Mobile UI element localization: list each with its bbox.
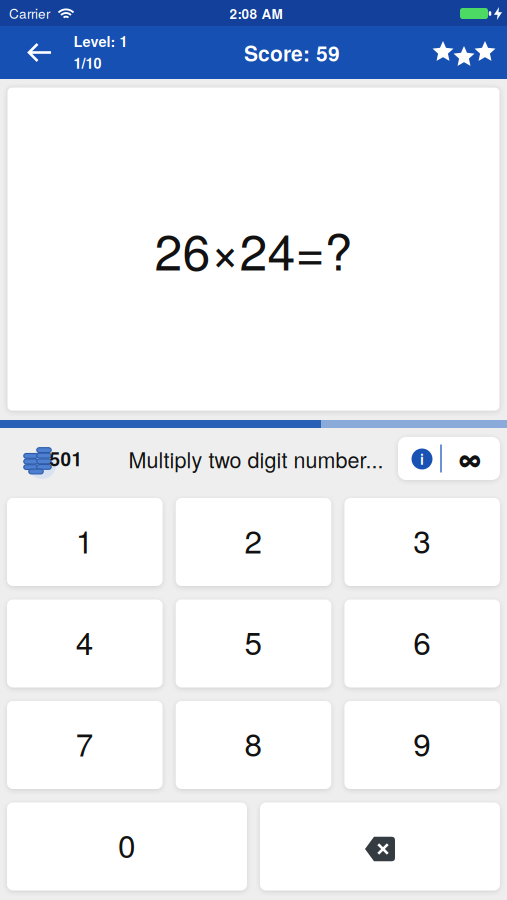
button[interactable]: 2 bbox=[176, 498, 331, 586]
button[interactable]: 9 bbox=[344, 701, 500, 789]
staticText: 6 bbox=[413, 619, 431, 664]
staticText: 2 bbox=[244, 517, 262, 562]
button[interactable]: 8 bbox=[176, 701, 331, 789]
staticText: Level: 1 bbox=[73, 31, 127, 51]
button[interactable]: 7 bbox=[7, 701, 163, 789]
button[interactable]: 0 bbox=[7, 802, 247, 890]
staticText: Multiply two digit number... bbox=[128, 444, 383, 474]
staticText: 1 bbox=[76, 517, 94, 562]
button[interactable]: 6 bbox=[344, 599, 500, 687]
button[interactable] bbox=[429, 36, 499, 70]
button[interactable] bbox=[15, 26, 63, 79]
staticText: 4 bbox=[76, 619, 94, 664]
staticText: 7 bbox=[76, 720, 94, 765]
staticText: 501 bbox=[49, 445, 82, 472]
staticText: 1/10 bbox=[73, 52, 101, 73]
button[interactable]: 5 bbox=[176, 599, 331, 687]
staticText: 5 bbox=[244, 619, 262, 664]
button[interactable] bbox=[260, 802, 500, 890]
staticText: Score: 59 bbox=[244, 38, 340, 68]
button[interactable]: 4 bbox=[7, 599, 163, 687]
staticText: Carrier bbox=[9, 3, 50, 23]
button[interactable]: 3 bbox=[344, 498, 500, 586]
staticText: 8 bbox=[244, 720, 262, 765]
button[interactable]: 1 bbox=[7, 498, 163, 586]
staticText: 3 bbox=[413, 517, 431, 562]
staticText: 26×24=? bbox=[154, 213, 352, 285]
staticText: 9 bbox=[413, 720, 431, 765]
button[interactable]: i bbox=[398, 437, 500, 480]
staticText: 0 bbox=[118, 822, 136, 867]
staticText: i bbox=[420, 449, 424, 469]
staticText: 2:08 AM bbox=[229, 4, 282, 23]
staticText: ∞ bbox=[458, 437, 481, 478]
